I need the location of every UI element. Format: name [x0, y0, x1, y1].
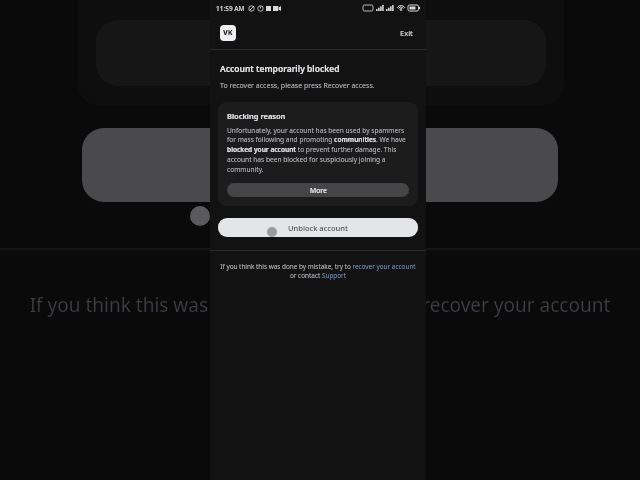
staticText: If you think this was done by mistake, t…	[220, 262, 416, 280]
staticText: 11:59 AM	[216, 4, 245, 13]
staticText: To recover access, please press Recover …	[220, 81, 375, 91]
staticText: If you think this was done by mistake, t…	[0, 292, 640, 318]
button[interactable]: Unblock account	[218, 218, 418, 237]
staticText: More	[310, 186, 327, 195]
staticText: Blocking reason	[227, 111, 286, 121]
staticText: Account temporarily blocked	[220, 63, 340, 75]
staticText: VK	[223, 28, 233, 38]
staticText: Exit	[400, 28, 413, 38]
staticText: Unfortunately, your account has been use…	[227, 126, 409, 174]
staticText: Unblock account	[288, 223, 348, 233]
button[interactable]: VK	[220, 25, 236, 41]
button[interactable]: Exit	[397, 25, 416, 41]
button[interactable]: More	[227, 183, 409, 197]
